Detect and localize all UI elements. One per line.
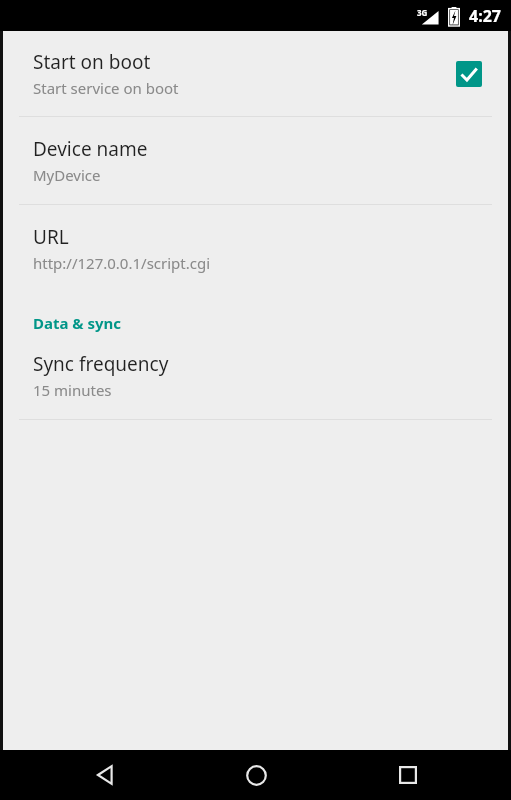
button[interactable]: Sync frequency [3,341,508,419]
button[interactable]: Start on boot [3,31,508,116]
button[interactable]: URL [3,205,508,292]
staticText: Device name [33,136,148,162]
staticText: http://127.0.0.1/script.cgi [33,253,211,273]
staticText: Start on boot [33,49,151,75]
staticText: 4:27 [469,5,501,27]
staticText: Sync frequency [33,351,169,377]
staticText: 15 minutes [33,380,112,400]
button[interactable]: Recent apps [345,750,471,800]
staticText: Data & sync [33,313,122,333]
staticText: MyDevice [33,165,101,185]
staticText: 3G [417,7,428,18]
staticText: URL [33,224,69,250]
button[interactable]: Back [42,750,168,800]
button[interactable]: Device name [3,117,508,204]
staticText: Start service on boot [33,78,179,98]
button[interactable]: Start on boot toggle [452,57,486,91]
button[interactable]: Home [193,750,319,800]
